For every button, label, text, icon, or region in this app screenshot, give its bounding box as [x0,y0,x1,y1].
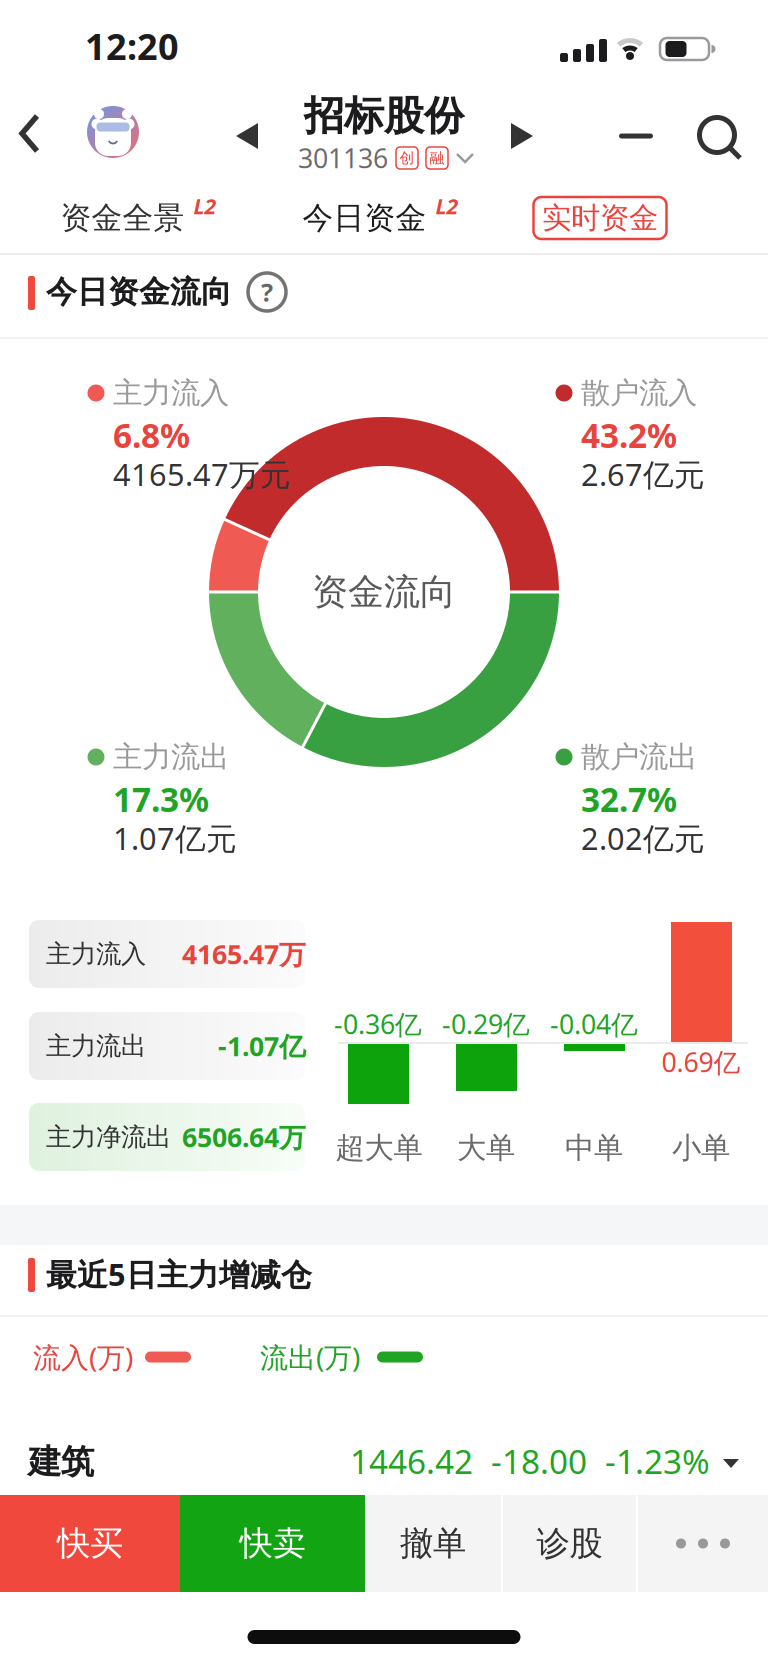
staticText: 2.67亿元 [581,454,705,494]
staticText: -0.36亿 [334,1006,422,1042]
button[interactable]: 建筑 [0,1430,768,1494]
staticText: 32.7% [581,777,677,821]
staticText: 43.2% [581,413,677,457]
staticText: 快卖 [239,1523,305,1564]
button[interactable]: 快买 [0,1495,180,1592]
staticText: 散户流出 [581,739,697,775]
staticText: -0.04亿 [550,1006,638,1042]
staticText: 建筑 [28,1441,94,1482]
staticText: 融 [429,149,444,167]
staticText: 6506.64万 [182,1119,306,1155]
staticText: 1.07亿元 [113,818,237,858]
staticText: 主力净流出 [46,1121,171,1152]
button[interactable] [87,106,139,158]
staticText: 大单 [457,1130,515,1166]
staticText: 创 [399,149,414,167]
staticText: 超大单 [335,1130,422,1166]
staticText: ? [261,275,273,309]
staticText: 实时资金 [542,200,658,236]
staticText: 4165.47万 [182,936,306,972]
staticText: 4165.47万元 [113,454,291,494]
staticText: 0.69亿 [661,1044,740,1080]
button[interactable] [19,99,41,169]
button[interactable] [694,115,744,165]
button[interactable]: 快卖 [180,1495,365,1592]
button[interactable]: 撤单 [365,1495,501,1592]
staticText: 撤单 [400,1523,466,1564]
staticText: 主力流出 [46,1030,146,1061]
staticText: 主力流出 [113,739,229,775]
staticText: 快买 [57,1523,123,1564]
button[interactable] [638,1495,768,1592]
button[interactable] [236,123,258,149]
staticText: 今日资金流向 [46,273,232,311]
staticText: 流入(万) [33,1338,133,1376]
staticText: 诊股 [536,1523,602,1564]
staticText: 招标股份 [304,91,464,140]
staticText: 资金流向 [312,570,456,614]
button[interactable]: 诊股 [503,1495,636,1592]
staticText: 中单 [565,1130,623,1166]
staticText: 主力流入 [46,938,146,969]
staticText: 2.02亿元 [581,818,705,858]
button[interactable]: 实时资金 [533,197,666,239]
staticText: 资金全景 [60,199,184,237]
staticText: -1.07亿 [218,1028,306,1064]
staticText: 散户流入 [581,375,697,411]
button[interactable]: 301136 [298,140,474,176]
staticText: 301136 [298,140,388,176]
staticText: 12:20 [85,22,179,70]
staticText: L2 [435,192,458,220]
button[interactable] [511,123,533,149]
button[interactable]: 今日资金 [302,192,477,244]
staticText: 今日资金 [302,199,426,237]
staticText: 1446.42 -18.00 -1.23% [350,1439,710,1483]
staticText: 6.8% [113,413,190,457]
staticText: 流出(万) [260,1338,360,1376]
button[interactable]: ? [247,272,287,312]
staticText: 主力流入 [113,375,229,411]
button[interactable]: 资金全景 [60,192,235,244]
staticText: L2 [193,192,216,220]
staticText: -0.29亿 [442,1006,530,1042]
button[interactable] [619,133,653,138]
staticText: 小单 [672,1130,730,1166]
staticText: 17.3% [113,777,209,821]
staticText: 最近5日主力增减仓 [46,1254,312,1294]
